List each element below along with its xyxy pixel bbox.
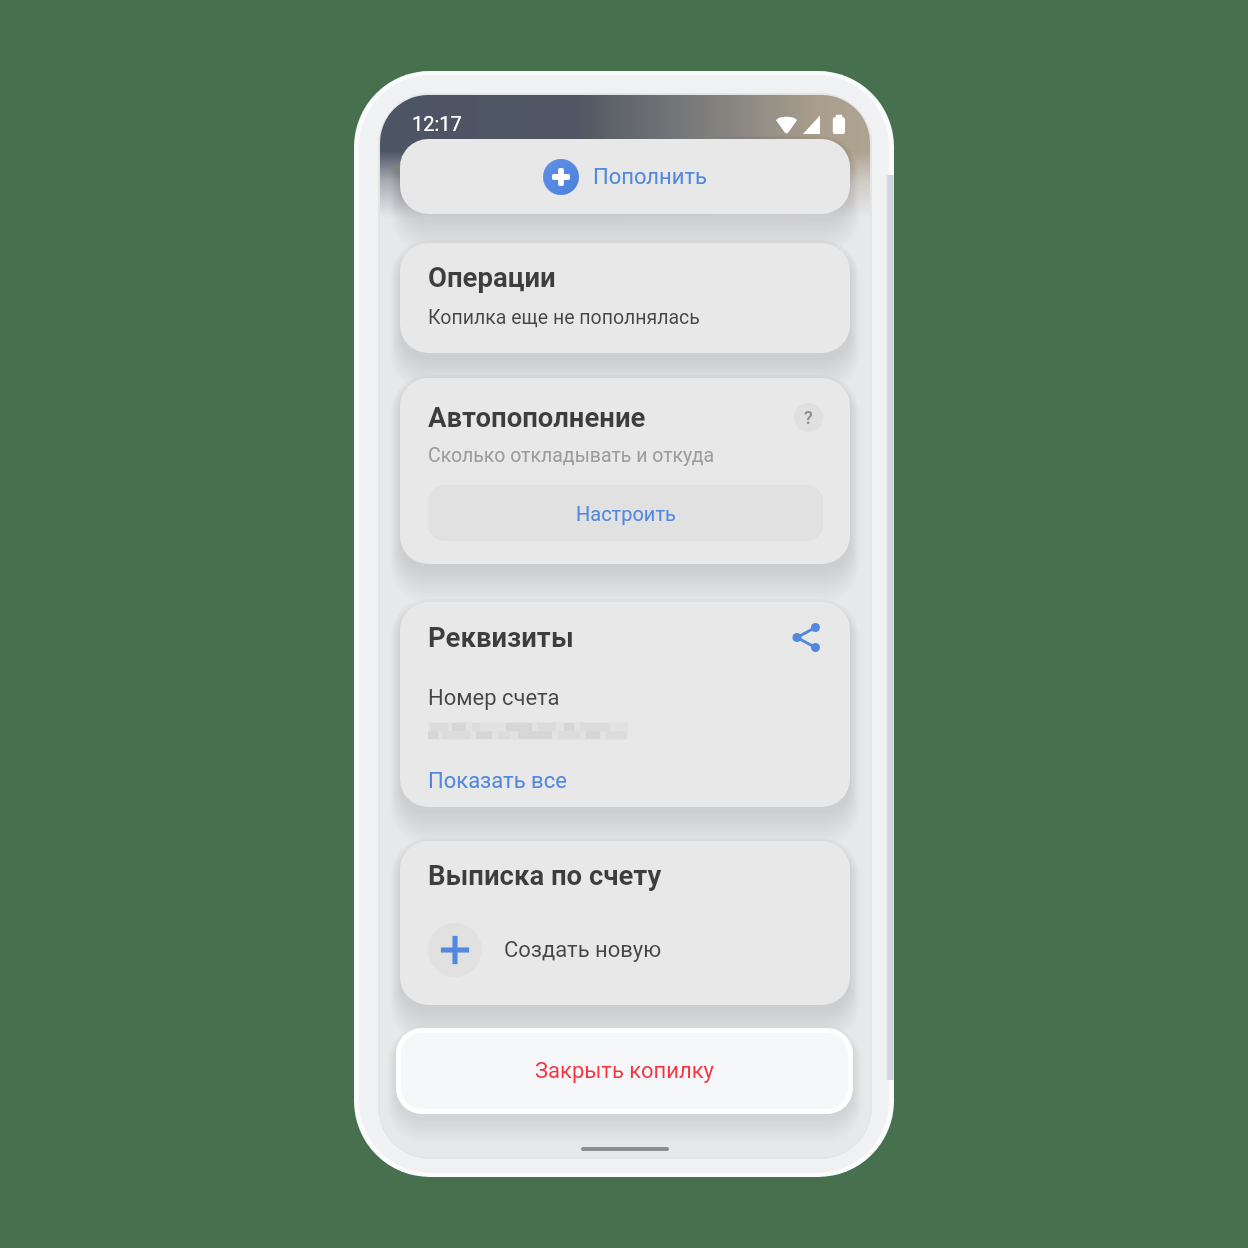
staticText: Операции [428, 261, 556, 293]
button[interactable]: Закрыть копилку [396, 1028, 853, 1114]
staticText: Показать все [428, 768, 567, 794]
staticText: Сколько откладывать и откуда [428, 444, 715, 467]
staticText: Номер счета [428, 685, 560, 711]
button[interactable]: Help [794, 403, 823, 432]
button[interactable]: Создать новую [428, 923, 826, 977]
staticText: Настроить [576, 502, 676, 525]
staticText: ? [804, 407, 813, 428]
staticText: Копилка еще не пополнялась [428, 306, 700, 329]
staticText: Автопополнение [428, 401, 646, 433]
staticText: Выписка по счету [428, 859, 662, 891]
staticText: Создать новую [504, 937, 662, 963]
staticText: Закрыть копилку [535, 1058, 714, 1084]
button[interactable]: Share [791, 622, 821, 652]
staticText: Пополнить [593, 164, 707, 190]
staticText: 12:17 [412, 112, 462, 135]
staticText: Реквизиты [428, 621, 574, 653]
button[interactable]: Настроить [428, 485, 823, 541]
button[interactable]: Пополнить [400, 139, 850, 214]
